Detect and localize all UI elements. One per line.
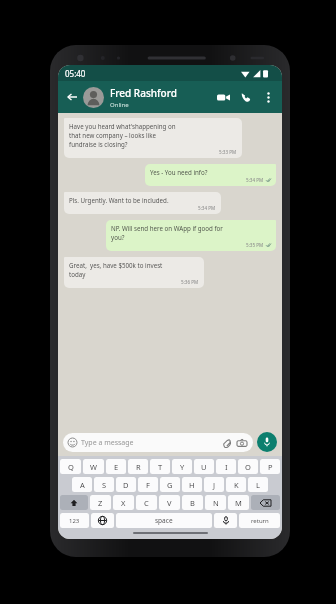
button[interactable]: Great, yes, have $500k to invest bbox=[64, 257, 204, 288]
button[interactable]: V bbox=[159, 495, 180, 510]
staticText: Great, yes, have $500k to invest bbox=[69, 261, 163, 269]
button[interactable]: Type a message bbox=[63, 433, 253, 452]
button[interactable]: T bbox=[150, 459, 170, 474]
button[interactable]: Q bbox=[60, 459, 81, 474]
button[interactable]: NP. Will send here on WApp if good for bbox=[106, 220, 276, 251]
staticText: O bbox=[245, 462, 251, 472]
button[interactable]: F bbox=[138, 477, 158, 492]
button[interactable]: R bbox=[128, 459, 148, 474]
staticText: Z bbox=[98, 498, 103, 508]
staticText: Fred Rashford bbox=[110, 86, 177, 100]
staticText: return bbox=[251, 517, 269, 525]
button[interactable]: Attach bbox=[221, 437, 233, 449]
button[interactable]: J bbox=[204, 477, 224, 492]
staticText: H bbox=[189, 480, 195, 490]
staticText: 5:34 PM bbox=[246, 177, 264, 183]
staticText: you? bbox=[111, 233, 125, 241]
staticText: R bbox=[136, 462, 141, 472]
button[interactable]: H bbox=[182, 477, 202, 492]
staticText: M bbox=[235, 498, 242, 508]
button[interactable]: S bbox=[94, 477, 114, 492]
staticText: Yes - You need info? bbox=[150, 168, 208, 176]
staticText: 123 bbox=[69, 517, 80, 525]
staticText: Q bbox=[68, 462, 74, 472]
staticText: V bbox=[167, 498, 172, 508]
button[interactable]: P bbox=[260, 459, 280, 474]
staticText: 5:35 PM bbox=[246, 242, 264, 248]
button[interactable]: O bbox=[238, 459, 258, 474]
staticText: Y bbox=[180, 462, 185, 472]
button[interactable]: Z bbox=[90, 495, 111, 510]
staticText: F bbox=[146, 480, 150, 490]
button[interactable]: Change keyboard bbox=[91, 513, 114, 528]
button[interactable]: A bbox=[72, 477, 92, 492]
button[interactable]: E bbox=[106, 459, 126, 474]
staticText: G bbox=[167, 480, 173, 490]
button[interactable]: K bbox=[226, 477, 246, 492]
button[interactable]: Have you heard what'shappening on bbox=[64, 118, 242, 158]
staticText: E bbox=[114, 462, 119, 472]
staticText: L bbox=[256, 480, 260, 490]
staticText: A bbox=[80, 480, 85, 490]
button[interactable]: X bbox=[113, 495, 134, 510]
staticText: 5:34 PM bbox=[198, 205, 216, 211]
button[interactable]: Backspace bbox=[251, 495, 280, 510]
button[interactable]: U bbox=[194, 459, 214, 474]
staticText: P bbox=[268, 462, 273, 472]
staticText: 5:36 PM bbox=[181, 279, 199, 285]
button[interactable]: L bbox=[248, 477, 268, 492]
staticText: fundraise is closing? bbox=[69, 140, 128, 148]
staticText: S bbox=[102, 480, 107, 490]
staticText: B bbox=[190, 498, 195, 508]
button[interactable]: Contact avatar bbox=[83, 87, 104, 108]
staticText: N bbox=[213, 498, 219, 508]
staticText: T bbox=[158, 462, 163, 472]
button[interactable]: space bbox=[116, 513, 212, 528]
button[interactable]: Record voice message bbox=[257, 432, 277, 452]
staticText: Type a message bbox=[81, 438, 134, 448]
button[interactable]: Camera bbox=[236, 437, 248, 449]
staticText: D bbox=[123, 480, 129, 490]
button[interactable]: Fred Rashford bbox=[110, 86, 213, 109]
staticText: that new company – looks like bbox=[69, 131, 157, 139]
staticText: U bbox=[201, 462, 207, 472]
button[interactable]: 123 bbox=[60, 513, 89, 528]
staticText: X bbox=[121, 498, 126, 508]
button[interactable]: B bbox=[182, 495, 203, 510]
staticText: K bbox=[234, 480, 239, 490]
button[interactable]: G bbox=[160, 477, 180, 492]
staticText: W bbox=[90, 462, 97, 472]
staticText: Pls. Urgently. Want to be included. bbox=[69, 196, 169, 204]
staticText: 5:33 PM bbox=[219, 149, 237, 155]
button[interactable]: Yes - You need info? bbox=[145, 164, 276, 186]
button[interactable]: return bbox=[239, 513, 280, 528]
button[interactable]: Y bbox=[172, 459, 192, 474]
button[interactable]: Voice input bbox=[214, 513, 237, 528]
button[interactable]: Back bbox=[63, 88, 81, 106]
button[interactable]: I bbox=[216, 459, 236, 474]
button[interactable]: D bbox=[116, 477, 136, 492]
button[interactable]: Shift bbox=[60, 495, 88, 510]
button[interactable]: Video call bbox=[213, 87, 233, 107]
button[interactable]: N bbox=[205, 495, 226, 510]
staticText: C bbox=[144, 498, 149, 508]
staticText: space bbox=[155, 516, 173, 525]
button[interactable]: C bbox=[136, 495, 157, 510]
staticText: Have you heard what'shappening on bbox=[69, 122, 176, 130]
staticText: Online bbox=[110, 101, 129, 109]
button[interactable]: M bbox=[228, 495, 249, 510]
staticText: I bbox=[225, 462, 228, 472]
button[interactable]: W bbox=[83, 459, 104, 474]
staticText: J bbox=[213, 480, 216, 490]
button[interactable]: More options bbox=[259, 88, 277, 106]
staticText: NP. Will send here on WApp if good for bbox=[111, 224, 223, 232]
staticText: today bbox=[69, 270, 86, 278]
staticText: 05:40 bbox=[65, 68, 86, 79]
button[interactable]: Pls. Urgently. Want to be included. bbox=[64, 192, 221, 214]
button[interactable]: Voice call bbox=[236, 87, 256, 107]
